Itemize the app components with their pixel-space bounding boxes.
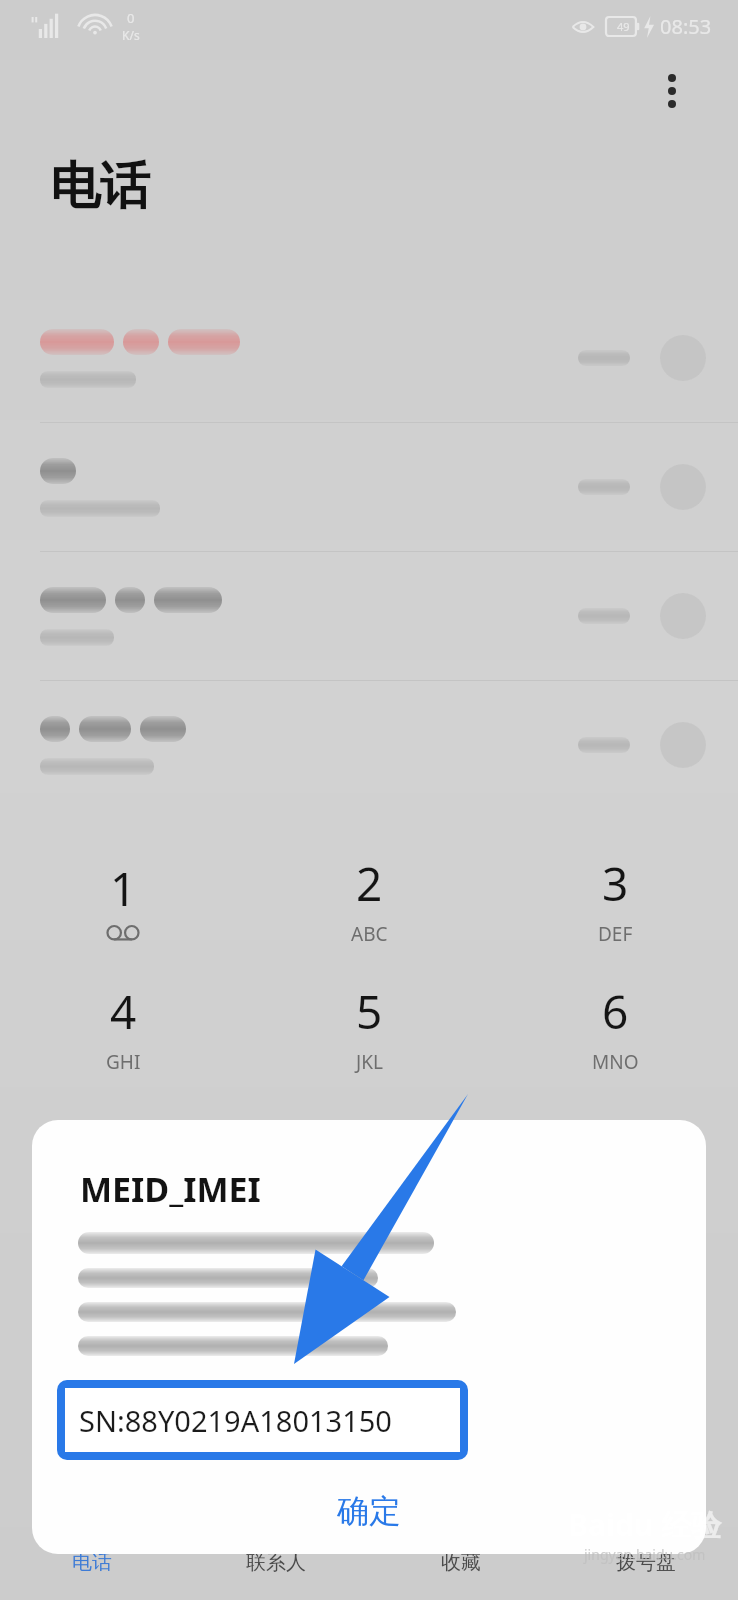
staticText: ABC bbox=[351, 921, 388, 947]
staticText: 电话 bbox=[72, 1550, 112, 1575]
button[interactable]: 电话 bbox=[0, 1524, 184, 1600]
button[interactable]: 5 bbox=[246, 963, 492, 1091]
button[interactable]: Call details bbox=[660, 593, 706, 639]
button[interactable]: Call details bbox=[660, 722, 706, 768]
button[interactable]: 4 bbox=[0, 963, 246, 1091]
staticText: GHI bbox=[106, 1049, 141, 1075]
staticText: 2 bbox=[356, 852, 383, 915]
button[interactable]: Call details bbox=[0, 552, 738, 680]
staticText: 收藏 bbox=[441, 1550, 481, 1575]
staticText: 49 bbox=[617, 19, 630, 34]
staticText: 1 bbox=[110, 857, 137, 920]
staticText: DEF bbox=[598, 921, 633, 947]
button[interactable]: More options bbox=[646, 65, 698, 117]
button[interactable]: 联系人 bbox=[184, 1524, 368, 1600]
button[interactable]: 确定 bbox=[32, 1468, 706, 1554]
staticText: 5 bbox=[356, 980, 383, 1043]
staticText: SN:88Y0219A18013150 bbox=[79, 1401, 392, 1440]
button[interactable]: Call details bbox=[0, 294, 738, 422]
button[interactable]: SN:88Y0219A18013150 bbox=[65, 1388, 460, 1452]
staticText: 联系人 bbox=[246, 1550, 306, 1575]
staticText: 08:53 bbox=[660, 13, 712, 40]
staticText: 6 bbox=[602, 980, 629, 1043]
button[interactable]: Call details bbox=[660, 335, 706, 381]
staticText: MEID_IMEI bbox=[80, 1166, 261, 1212]
staticText: Baidu 经验 bbox=[568, 1504, 722, 1545]
staticText: 4 bbox=[110, 980, 137, 1043]
button[interactable]: Call details bbox=[0, 423, 738, 551]
staticText: JKL bbox=[356, 1049, 383, 1075]
staticText: 电话 bbox=[50, 155, 150, 218]
button[interactable]: 3 bbox=[492, 835, 738, 963]
staticText: MNO bbox=[592, 1049, 639, 1075]
staticText: 确定 bbox=[337, 1491, 401, 1531]
staticText: jingyan.baidu.com bbox=[584, 1545, 706, 1564]
button[interactable]: 拨号盘 bbox=[553, 1524, 738, 1600]
button[interactable]: Call details bbox=[660, 464, 706, 510]
button[interactable]: 6 bbox=[492, 963, 738, 1091]
button[interactable]: Call details bbox=[0, 681, 738, 809]
button[interactable]: 1 bbox=[0, 835, 246, 963]
button[interactable]: 收藏 bbox=[368, 1524, 553, 1600]
staticText: 0 bbox=[127, 9, 135, 27]
staticText: 3 bbox=[602, 852, 629, 915]
staticText: K/s bbox=[122, 27, 140, 43]
staticText: 拨号盘 bbox=[616, 1550, 676, 1575]
button[interactable]: 2 bbox=[246, 835, 492, 963]
